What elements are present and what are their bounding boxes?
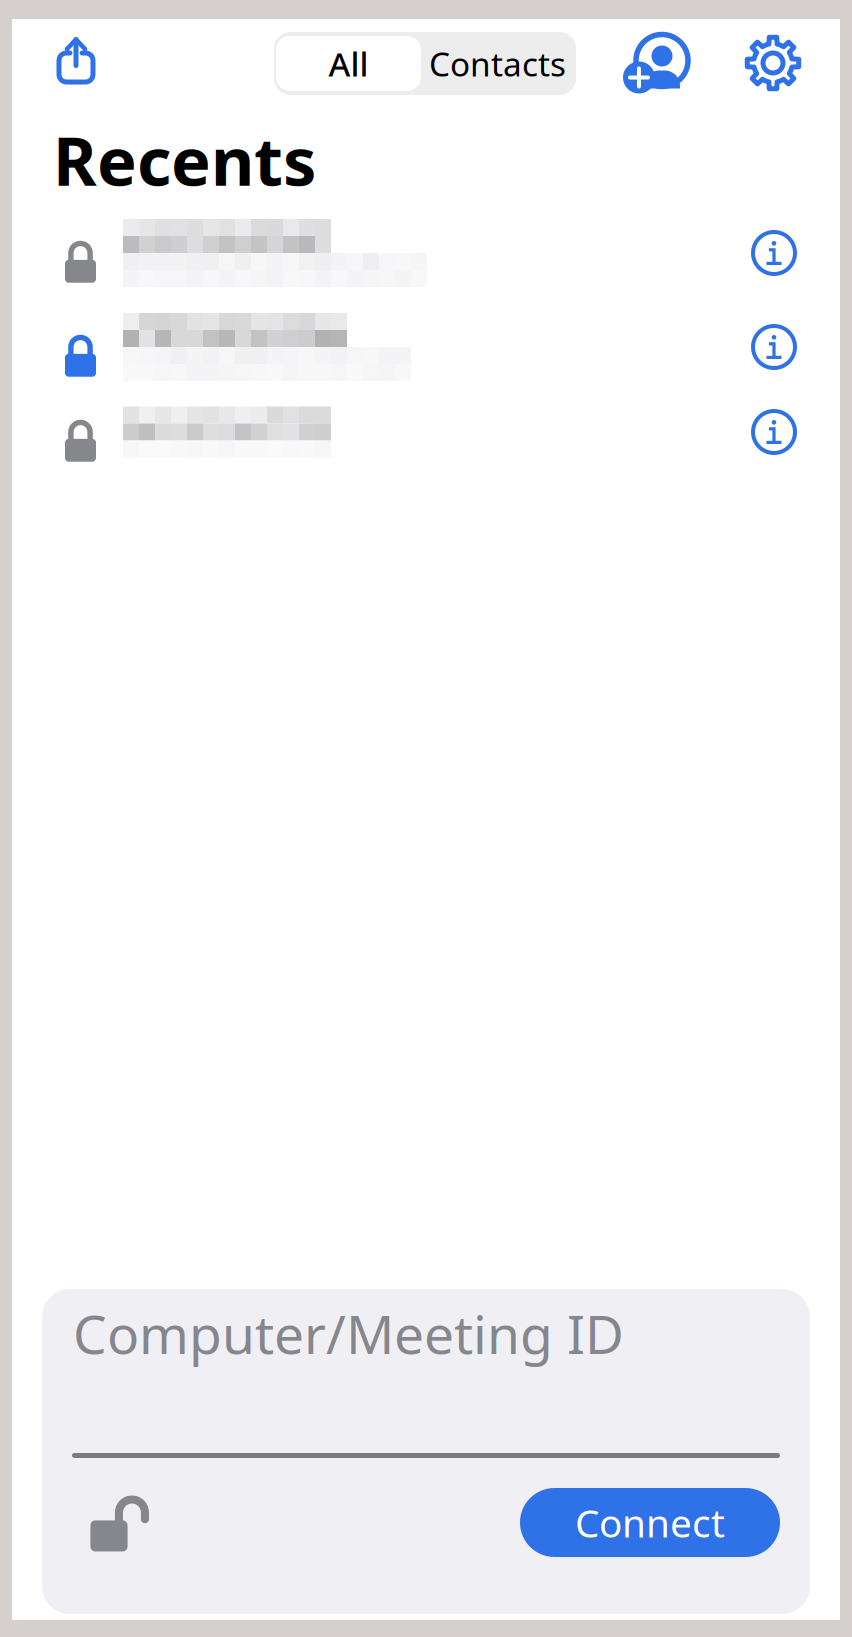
staticText: Contacts (429, 41, 566, 86)
button[interactable] (12, 394, 840, 470)
button[interactable]: Contacts (421, 36, 574, 91)
button[interactable]: All (276, 36, 421, 91)
staticText: Connect (575, 1497, 725, 1548)
button[interactable] (12, 300, 840, 394)
staticText: All (328, 41, 368, 86)
button[interactable]: Share (54, 26, 93, 77)
button[interactable] (12, 206, 840, 300)
button[interactable]: Unlock (78, 1483, 140, 1539)
button[interactable]: Settings (747, 37, 799, 89)
button[interactable]: Add contact (615, 25, 681, 88)
staticText: Computer/Meeting ID (73, 1298, 624, 1369)
staticText: Recents (53, 116, 316, 204)
button[interactable]: Connect (520, 1488, 780, 1557)
